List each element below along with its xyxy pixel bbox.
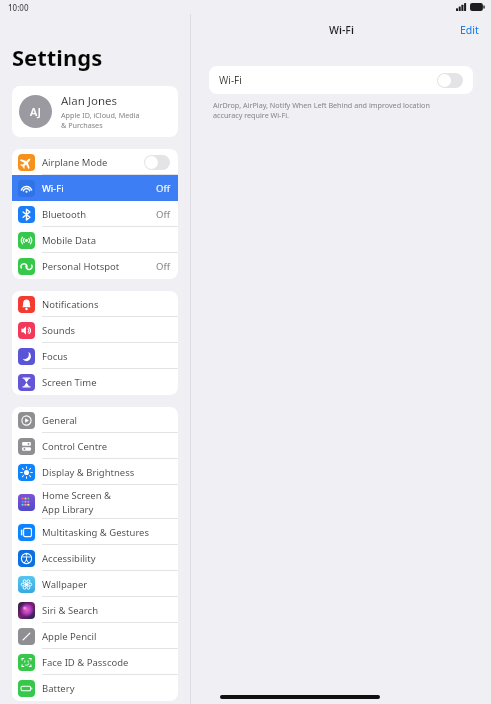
button[interactable]: Mobile Data [12, 227, 178, 253]
staticText: AJ [30, 104, 41, 119]
button[interactable]: Display & Brightness [12, 459, 178, 485]
staticText: accuracy require Wi-Fi. [213, 110, 289, 120]
button[interactable]: Wi-Fi [12, 175, 178, 201]
staticText: Alan Jones [61, 93, 118, 109]
staticText: Wi-Fi [219, 73, 242, 87]
button[interactable]: Accessibility [12, 545, 178, 571]
button[interactable]: AJ [12, 86, 178, 137]
staticText: App Library [42, 503, 94, 516]
staticText: Notifications [42, 298, 99, 311]
button[interactable]: Edit [448, 19, 491, 41]
staticText: Accessibility [42, 552, 96, 565]
button[interactable]: Home Screen & [12, 485, 178, 519]
staticText: Apple Pencil [42, 630, 97, 643]
button[interactable]: Screen Time [12, 369, 178, 395]
button[interactable]: Toggle [144, 155, 170, 170]
staticText: Mobile Data [42, 234, 96, 247]
staticText: Wi-Fi [329, 23, 354, 37]
staticText: Battery [42, 682, 75, 695]
staticText: Personal Hotspot [42, 260, 120, 273]
staticText: Off [156, 182, 170, 195]
staticText: Sounds [42, 324, 76, 337]
staticText: Settings [12, 42, 103, 72]
button[interactable]: Toggle [437, 73, 463, 88]
button[interactable]: Bluetooth [12, 201, 178, 227]
staticText: AirDrop, AirPlay, Notify When Left Behin… [213, 100, 430, 110]
button[interactable]: General [12, 407, 178, 433]
staticText: General [42, 414, 78, 427]
staticText: 10:00 [8, 2, 29, 13]
staticText: Multitasking & Gestures [42, 526, 150, 539]
staticText: Wallpaper [42, 578, 88, 591]
button[interactable]: Siri & Search [12, 597, 178, 623]
staticText: Off [156, 260, 170, 273]
button[interactable]: Battery [12, 675, 178, 701]
staticText: Airplane Mode [42, 156, 108, 169]
staticText: Wi-Fi [42, 182, 64, 195]
staticText: Control Centre [42, 440, 108, 453]
button[interactable]: Wi-Fi [209, 66, 473, 94]
staticText: Focus [42, 350, 68, 363]
button[interactable]: Apple Pencil [12, 623, 178, 649]
button[interactable]: Control Centre [12, 433, 178, 459]
staticText: Face ID & Passcode [42, 656, 129, 669]
staticText: Off [156, 208, 170, 221]
button[interactable]: Multitasking & Gestures [12, 519, 178, 545]
button[interactable]: Sounds [12, 317, 178, 343]
staticText: Bluetooth [42, 208, 87, 221]
staticText: Display & Brightness [42, 466, 135, 479]
button[interactable]: Focus [12, 343, 178, 369]
button[interactable]: Face ID & Passcode [12, 649, 178, 675]
button[interactable]: Personal Hotspot [12, 253, 178, 279]
staticText: Home Screen & [42, 489, 112, 502]
staticText: Apple ID, iCloud, Media [61, 110, 140, 120]
button[interactable]: Wallpaper [12, 571, 178, 597]
staticText: Edit [460, 23, 479, 37]
button[interactable]: Notifications [12, 291, 178, 317]
button[interactable]: Airplane Mode [12, 149, 178, 175]
staticText: & Purchases [61, 120, 103, 130]
staticText: Screen Time [42, 376, 97, 389]
staticText: Siri & Search [42, 604, 99, 617]
